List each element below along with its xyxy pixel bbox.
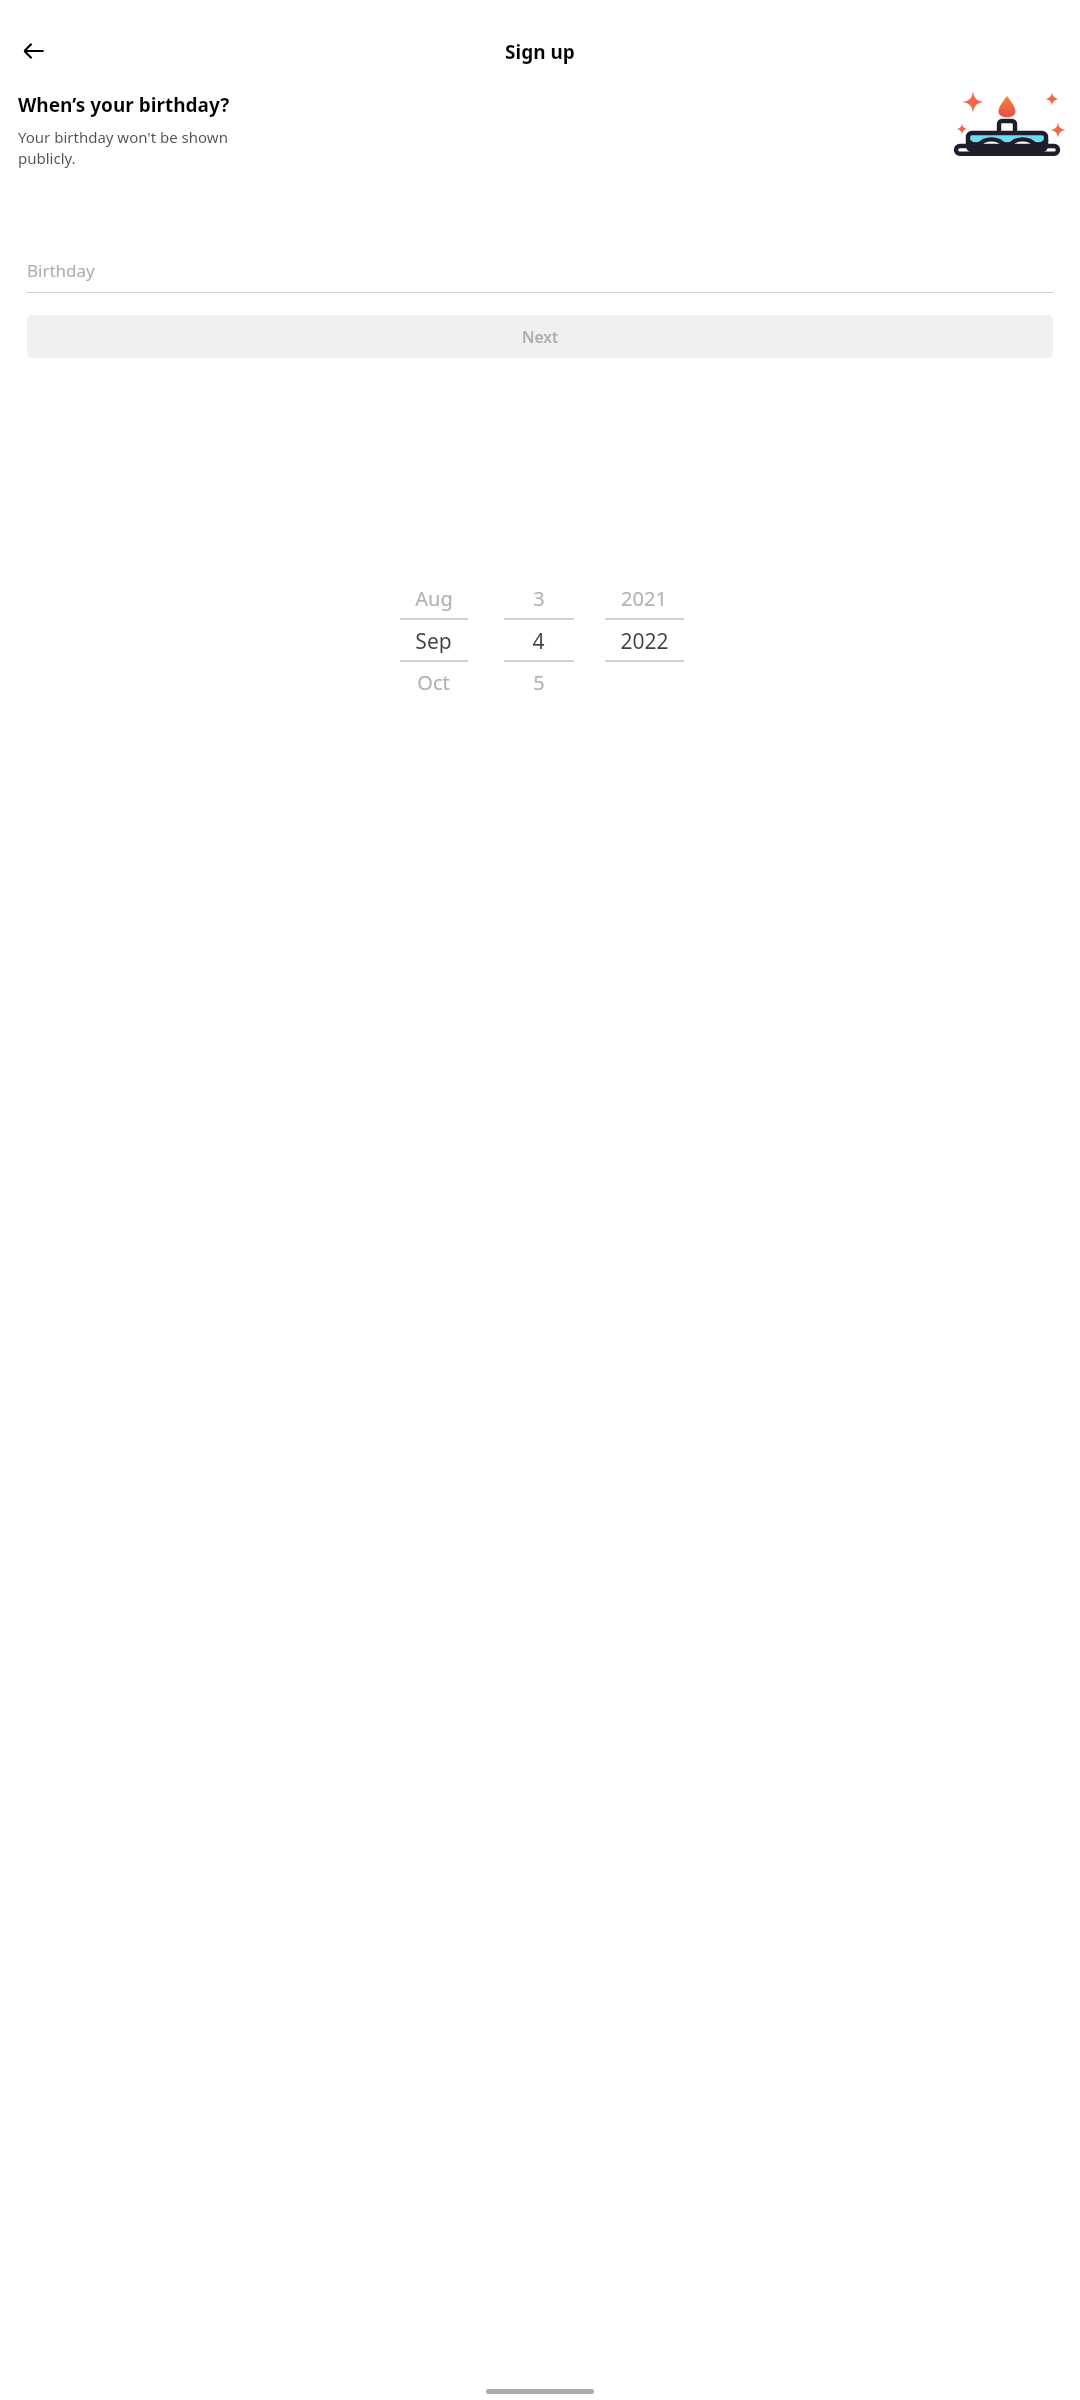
staticText: 4 xyxy=(532,627,545,653)
staticText: Aug xyxy=(415,585,453,611)
staticText: Sep xyxy=(415,627,452,653)
staticText: 2021 xyxy=(621,585,667,611)
staticText: When’s your birthday? xyxy=(18,92,230,118)
staticText: Next xyxy=(522,326,559,348)
staticText: 3 xyxy=(533,585,545,611)
staticText: Sign up xyxy=(505,39,575,65)
staticText: 5 xyxy=(533,669,545,695)
staticText: Birthday xyxy=(27,259,95,282)
staticText: Oct xyxy=(417,669,450,695)
button[interactable]: Next xyxy=(27,315,1053,358)
button[interactable]: Back xyxy=(10,27,58,75)
button[interactable]: Aug xyxy=(390,585,477,695)
staticText: 2022 xyxy=(620,627,669,653)
button[interactable]: 2021 xyxy=(598,585,690,695)
button[interactable]: Birthday xyxy=(27,248,1053,292)
staticText: Your birthday won't be shown publicly. xyxy=(18,127,233,169)
button[interactable]: 3 xyxy=(495,585,582,695)
